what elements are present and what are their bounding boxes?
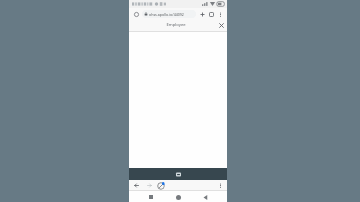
button[interactable]: Forward <box>145 181 153 189</box>
button[interactable]: Home <box>132 10 140 18</box>
staticText: ohss.apollo.io/44092 <box>149 12 184 17</box>
button[interactable]: Back <box>132 181 140 189</box>
staticText: Employee <box>166 22 186 28</box>
button[interactable]: More options <box>216 181 224 189</box>
button[interactable]: Action <box>174 170 183 179</box>
button[interactable]: Back <box>200 192 210 202</box>
button[interactable]: Switch tabs <box>207 10 215 18</box>
button[interactable]: Close find bar <box>217 21 225 29</box>
button[interactable]: More options <box>216 10 224 18</box>
button[interactable]: Home <box>173 192 183 202</box>
button[interactable]: Recent apps <box>146 192 156 202</box>
button[interactable]: ohss.apollo.io/44092 <box>142 10 196 18</box>
button[interactable]: Share <box>156 181 165 190</box>
button[interactable]: New tab <box>198 10 206 18</box>
